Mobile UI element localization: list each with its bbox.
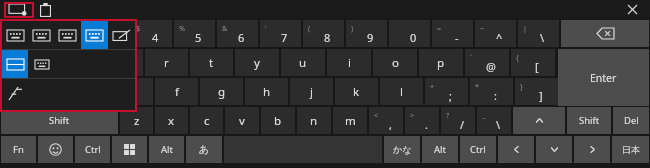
button[interactable]: Windows xyxy=(112,136,147,163)
button[interactable]: n xyxy=(297,107,331,134)
button[interactable]: Emoji xyxy=(38,136,73,163)
button[interactable]: Keyboard layout option xyxy=(2,21,28,49)
button[interactable]: Backspace xyxy=(561,20,649,47)
button[interactable]: Right xyxy=(574,136,610,163)
button[interactable]: ~ xyxy=(475,20,516,47)
staticText: 6 xyxy=(238,30,245,45)
button[interactable]: v xyxy=(225,107,259,134)
button[interactable]: Keyboard layout option xyxy=(81,21,108,49)
button[interactable]: } xyxy=(515,78,558,105)
button[interactable]: Keyboard layout option xyxy=(54,21,81,49)
button[interactable]: r xyxy=(145,49,188,76)
staticText: { xyxy=(516,52,519,62)
staticText: かな xyxy=(393,144,412,155)
staticText: 0 xyxy=(410,30,417,45)
button[interactable]: ? xyxy=(441,107,475,134)
button[interactable]: Alt xyxy=(149,136,184,163)
button[interactable]: ` xyxy=(465,49,509,76)
button[interactable]: ( xyxy=(303,20,344,47)
button[interactable]: あ xyxy=(186,136,222,163)
button[interactable]: Ctrl xyxy=(75,136,110,163)
button[interactable]: u xyxy=(281,49,325,76)
button[interactable]: w xyxy=(55,49,98,76)
button[interactable]: t xyxy=(190,49,233,76)
button[interactable]: Left xyxy=(498,136,534,163)
button[interactable]: Keyboard layout option xyxy=(28,50,55,78)
button[interactable]: " xyxy=(88,20,129,47)
staticText: b xyxy=(274,113,282,129)
staticText: + xyxy=(430,81,435,91)
button[interactable]: ! xyxy=(45,20,86,47)
button[interactable]: o xyxy=(373,49,417,76)
button[interactable]: かな xyxy=(384,136,420,163)
button[interactable]: g xyxy=(200,78,243,105)
button[interactable]: { xyxy=(511,49,555,76)
button[interactable]: j xyxy=(290,78,333,105)
button[interactable]: h xyxy=(245,78,288,105)
staticText: ' xyxy=(265,23,267,33)
button[interactable]: $ xyxy=(131,20,172,47)
button[interactable]: Del xyxy=(613,107,649,134)
staticText: 日本 xyxy=(622,144,640,155)
staticText: " xyxy=(93,23,96,33)
staticText: z xyxy=(134,113,140,129)
button[interactable]: b xyxy=(261,107,295,134)
button[interactable]: i xyxy=(327,49,371,76)
staticText: 9 xyxy=(367,30,374,45)
button[interactable]: < xyxy=(369,107,403,134)
button[interactable]: Clipboard xyxy=(39,3,52,17)
button[interactable]: Up xyxy=(513,107,565,134)
staticText: | xyxy=(523,23,527,33)
button[interactable]: 日本 xyxy=(612,136,649,163)
button[interactable]: Close xyxy=(614,0,650,19)
staticText: h xyxy=(263,84,271,100)
staticText: x xyxy=(168,113,175,129)
button[interactable]: z xyxy=(120,107,153,134)
button[interactable]: Handwriting xyxy=(2,79,29,107)
button[interactable]: q xyxy=(10,49,53,76)
button[interactable]: k xyxy=(335,78,378,105)
button[interactable]: l xyxy=(380,78,423,105)
button[interactable]: a xyxy=(17,78,61,105)
button[interactable]: + xyxy=(425,78,468,105)
staticText: Shift xyxy=(579,114,600,127)
button[interactable]: Keyboard layout xyxy=(9,3,28,16)
button[interactable]: f xyxy=(155,78,198,105)
button[interactable]: x xyxy=(155,107,188,134)
button[interactable]: Keyboard layout option xyxy=(28,21,54,49)
button[interactable]: e xyxy=(100,49,143,76)
button[interactable]: 1 xyxy=(1,20,43,47)
button[interactable]: & xyxy=(217,20,258,47)
button[interactable]: _ xyxy=(477,107,511,134)
button[interactable]: | xyxy=(518,20,559,47)
button[interactable]: = xyxy=(432,20,473,47)
button[interactable]: p xyxy=(419,49,463,76)
button[interactable]: Fn xyxy=(1,136,36,163)
button[interactable]: ) xyxy=(346,20,387,47)
button[interactable]: > xyxy=(405,107,439,134)
button[interactable]: Keyboard layout option xyxy=(2,50,28,78)
button[interactable]: % xyxy=(174,20,215,47)
button[interactable]: m xyxy=(333,107,367,134)
button[interactable]: 0 xyxy=(389,20,430,47)
button[interactable]: c xyxy=(190,107,223,134)
staticText: 8 xyxy=(324,30,331,45)
button[interactable]: Keyboard layout option xyxy=(108,21,135,49)
staticText: c xyxy=(204,113,210,129)
button[interactable]: Shift xyxy=(1,107,118,134)
button[interactable]: ' xyxy=(260,20,301,47)
button[interactable]: Enter xyxy=(558,49,649,106)
button[interactable]: s xyxy=(63,78,107,105)
staticText: $ xyxy=(136,23,141,33)
button[interactable]: Down xyxy=(536,136,572,163)
button[interactable]: Shift xyxy=(567,107,611,134)
button[interactable]: Ctrl xyxy=(460,136,496,163)
staticText: * xyxy=(475,81,479,91)
button[interactable]: y xyxy=(235,49,279,76)
button[interactable]: d xyxy=(109,78,153,105)
button[interactable]: Alt xyxy=(422,136,458,163)
button[interactable]: * xyxy=(470,78,513,105)
